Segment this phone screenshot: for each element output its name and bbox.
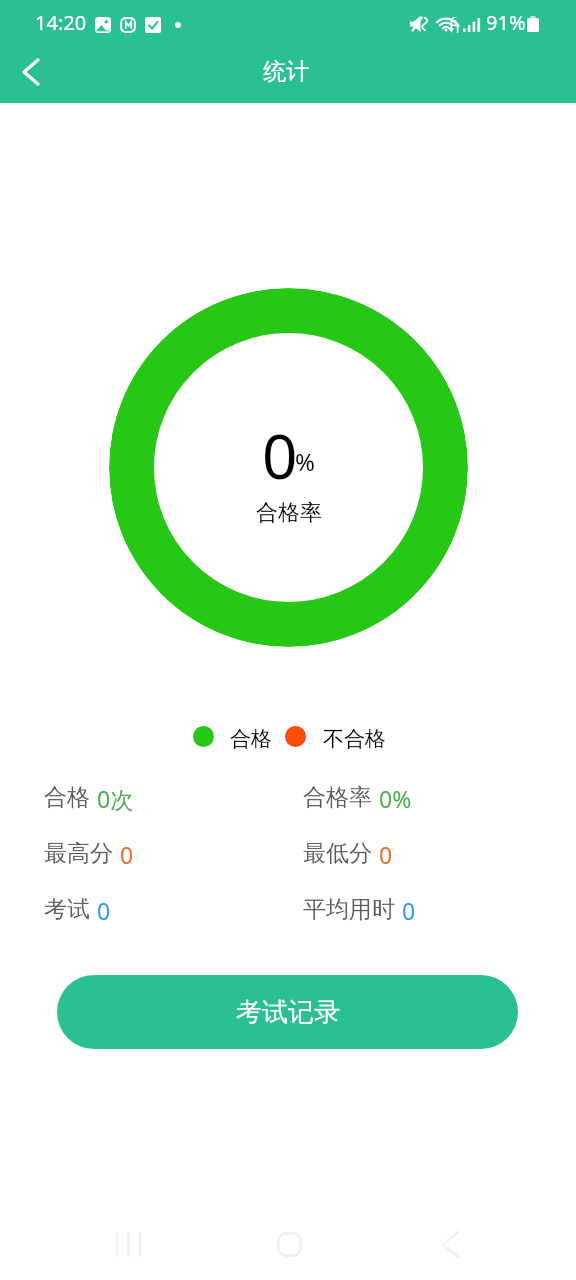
staticText: 平均用时 xyxy=(303,895,395,924)
staticText: 0 xyxy=(262,413,298,497)
staticText: 0% xyxy=(379,783,412,814)
staticText: 0 xyxy=(379,839,393,870)
staticText: 合格率 xyxy=(303,783,372,812)
button[interactable]: 考试记录 xyxy=(57,975,518,1049)
staticText: 0 xyxy=(402,895,416,926)
staticText: 合格率 xyxy=(256,499,322,527)
staticText: 合格 xyxy=(230,726,272,752)
staticText: 91% xyxy=(486,9,526,36)
staticText: 考试 xyxy=(44,895,90,924)
staticText: 最低分 xyxy=(303,839,372,868)
staticText: 0 xyxy=(97,895,111,926)
button[interactable]: Back xyxy=(3,44,59,100)
staticText: 0 xyxy=(120,839,134,870)
button[interactable]: Pass rate chart, 0 percent xyxy=(109,288,468,647)
staticText: 6 xyxy=(450,12,458,30)
staticText: 0次 xyxy=(97,783,134,814)
staticText: 考试记录 xyxy=(236,996,340,1029)
staticText: 14:20 xyxy=(35,9,87,36)
staticText: 不合格 xyxy=(323,726,386,752)
staticText: 合格 xyxy=(44,783,90,812)
staticText: 最高分 xyxy=(44,839,113,868)
staticText: 统计 xyxy=(263,57,309,86)
staticText: % xyxy=(295,445,315,478)
